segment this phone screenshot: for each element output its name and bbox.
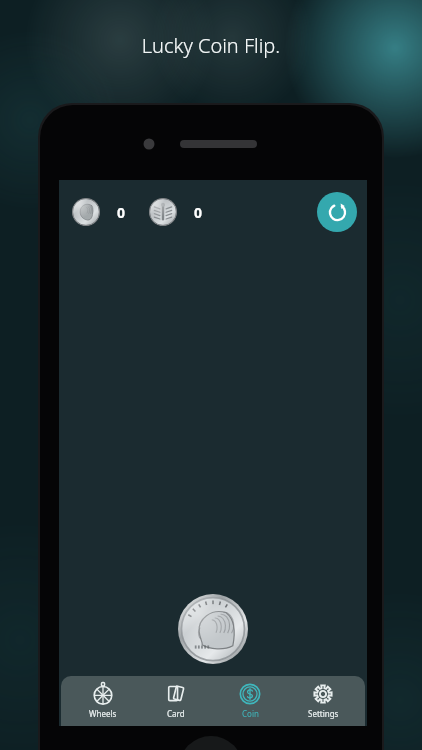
button[interactable]: Reset <box>317 192 357 232</box>
staticText: Settings <box>308 708 339 719</box>
button[interactable]: Settings <box>291 676 355 726</box>
staticText: 0 <box>117 203 126 222</box>
staticText: Wheels <box>89 708 117 719</box>
staticText: 0 <box>194 203 203 222</box>
staticText: Lucky Coin Flip. <box>0 32 422 59</box>
staticText: Card <box>167 708 185 719</box>
button[interactable]: Tails count <box>148 197 178 227</box>
button[interactable]: Coin <box>218 676 282 726</box>
button[interactable]: Flip coin <box>177 593 249 665</box>
staticText: Coin <box>242 708 259 719</box>
button[interactable]: Heads count <box>71 197 101 227</box>
button[interactable]: Card <box>144 676 208 726</box>
button[interactable]: Wheels <box>71 676 135 726</box>
